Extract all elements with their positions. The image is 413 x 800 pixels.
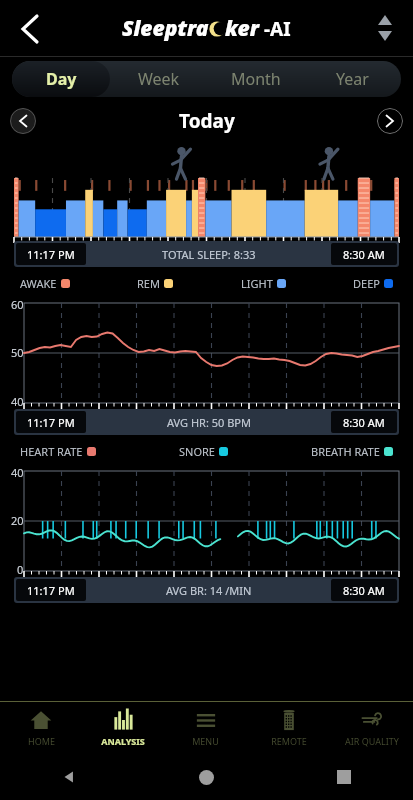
- staticText: TOTAL SLEEP: 8:33: [162, 247, 256, 262]
- staticText: 60: [11, 297, 24, 312]
- staticText: Month: [231, 68, 281, 90]
- button[interactable]: Back: [6, 6, 52, 52]
- button[interactable]: Sort: [365, 9, 405, 49]
- staticText: Day: [46, 68, 77, 90]
- button[interactable]: Day: [12, 61, 110, 97]
- button[interactable]: REMOTE: [247, 702, 330, 754]
- staticText: AWAKE: [20, 276, 57, 291]
- staticText: ANALYSIS: [101, 735, 145, 747]
- staticText: BREATH RATE: [311, 444, 380, 459]
- staticText: 8:30 AM: [343, 247, 385, 262]
- staticText: DEEP: [353, 276, 380, 291]
- staticText: 50: [11, 345, 24, 360]
- staticText: REMOTE: [271, 735, 307, 747]
- staticText: -AI: [259, 16, 291, 42]
- button[interactable]: HOME: [0, 702, 82, 754]
- staticText: Week: [138, 68, 180, 90]
- staticText: 40: [11, 394, 24, 409]
- staticText: Year: [336, 68, 369, 90]
- staticText: Today: [179, 108, 235, 134]
- button[interactable]: Year: [304, 61, 401, 97]
- staticText: HOME: [28, 735, 55, 747]
- staticText: 11:17 PM: [27, 415, 75, 430]
- staticText: HEART RATE: [20, 444, 83, 459]
- staticText: 11:17 PM: [27, 247, 75, 262]
- staticText: REM: [137, 276, 160, 291]
- staticText: 20: [11, 513, 24, 528]
- button[interactable]: Week: [110, 61, 207, 97]
- staticText: AVG BR: 14 /MIN: [166, 583, 252, 598]
- button[interactable]: Previous day: [10, 108, 36, 134]
- staticText: 8:30 AM: [343, 583, 385, 598]
- staticText: ker: [225, 14, 259, 43]
- staticText: 0: [17, 562, 24, 577]
- button[interactable]: Month: [207, 61, 304, 97]
- staticText: Sleeptra: [122, 14, 209, 43]
- staticText: AVG HR: 50 BPM: [167, 415, 251, 430]
- staticText: AIR QUALITY: [345, 735, 399, 747]
- staticText: LIGHT: [241, 276, 273, 291]
- staticText: 8:30 AM: [343, 415, 385, 430]
- button[interactable]: Next day: [377, 108, 403, 134]
- staticText: 11:17 PM: [27, 583, 75, 598]
- staticText: MENU: [192, 735, 219, 747]
- staticText: 40: [11, 465, 24, 480]
- button[interactable]: MENU: [164, 702, 247, 754]
- staticText: SNORE: [179, 444, 215, 459]
- button[interactable]: AIR QUALITY: [330, 702, 413, 754]
- button[interactable]: ANALYSIS: [82, 702, 164, 754]
